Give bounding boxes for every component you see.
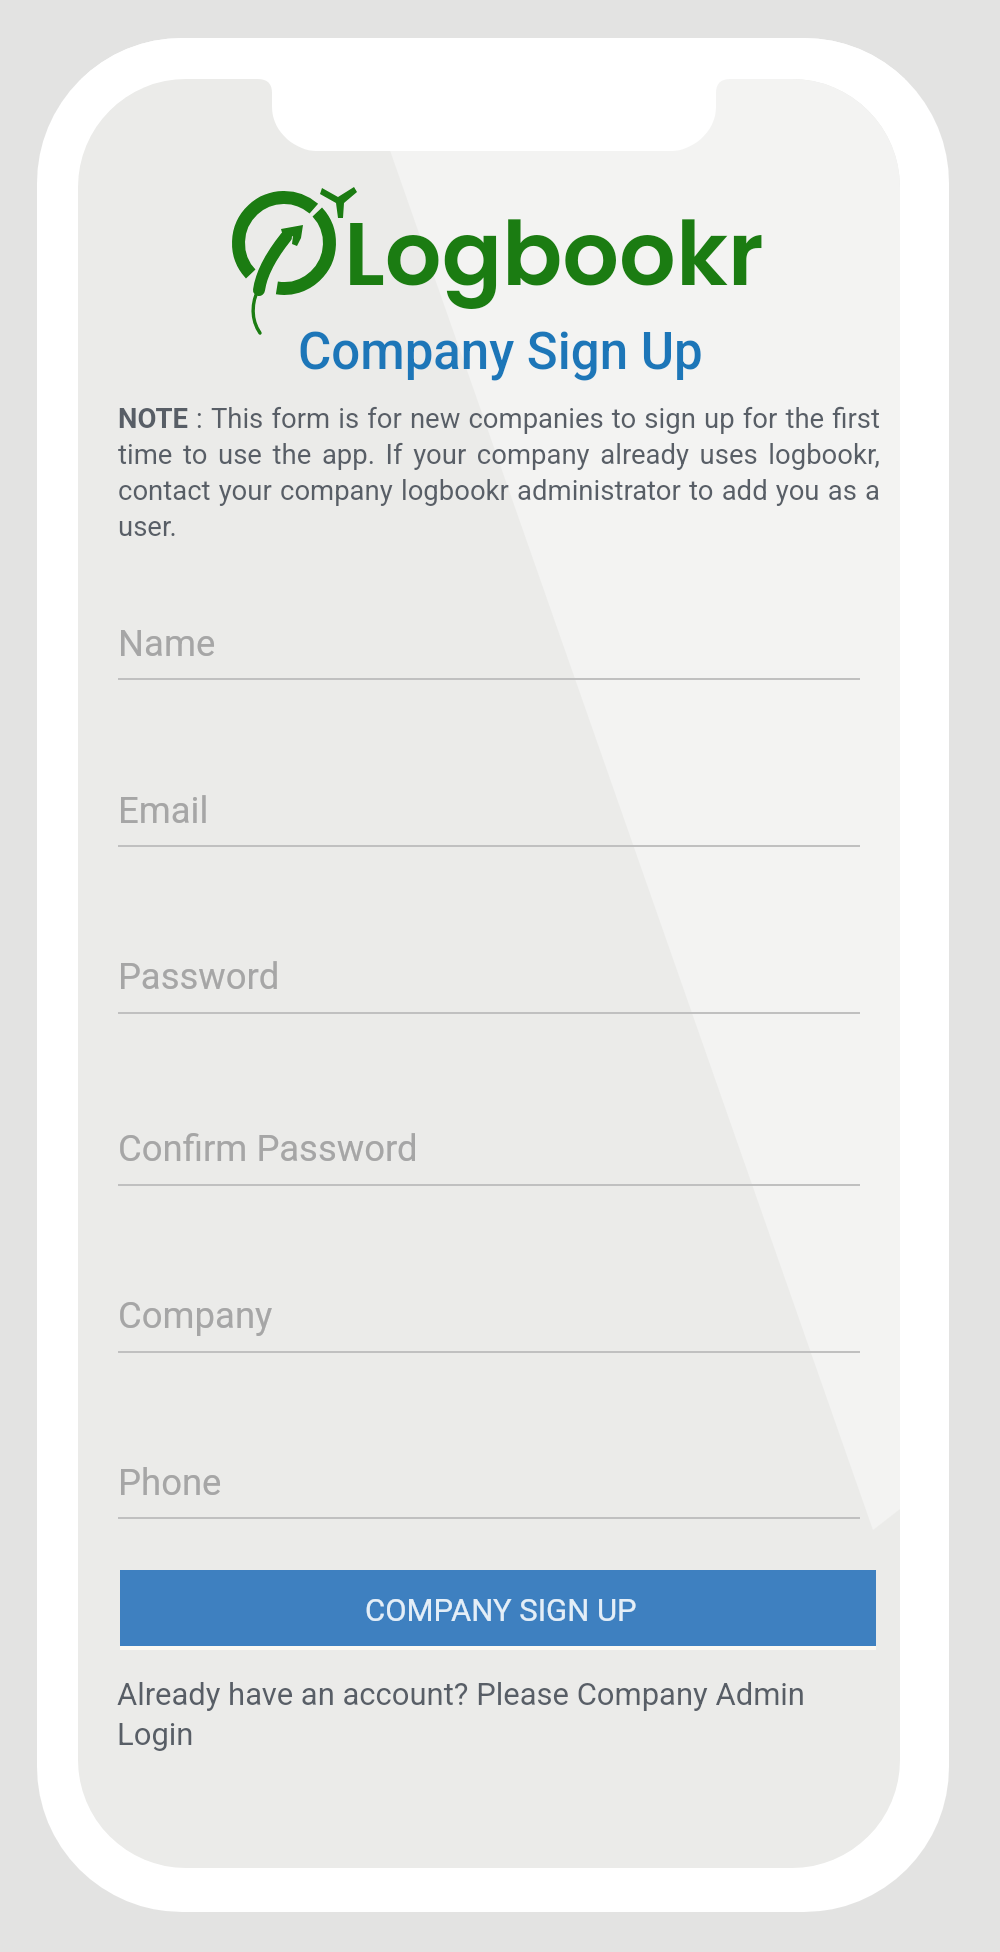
button[interactable]: Confirm Password bbox=[118, 1127, 860, 1187]
staticText: Phone bbox=[118, 1461, 222, 1504]
button[interactable]: Already have an account? Please Company … bbox=[117, 1676, 817, 1752]
staticText: Confirm Password bbox=[118, 1127, 418, 1170]
staticText: Name bbox=[118, 622, 216, 665]
staticText: Logbookr bbox=[344, 192, 764, 317]
button[interactable]: Company bbox=[118, 1294, 860, 1354]
staticText: Company bbox=[118, 1294, 273, 1337]
staticText: COMPANY SIGN UP bbox=[365, 1592, 637, 1628]
button[interactable]: COMPANY SIGN UP bbox=[120, 1570, 876, 1646]
button[interactable]: Phone bbox=[118, 1461, 860, 1520]
staticText: Email bbox=[118, 789, 209, 832]
staticText: Password bbox=[118, 955, 280, 998]
button[interactable]: Password bbox=[118, 955, 860, 1015]
staticText: NOTE : This form is for new companies to… bbox=[118, 402, 880, 542]
button[interactable]: Email bbox=[118, 789, 860, 848]
staticText: Company Sign Up bbox=[298, 322, 703, 382]
button[interactable]: Name bbox=[118, 622, 860, 681]
